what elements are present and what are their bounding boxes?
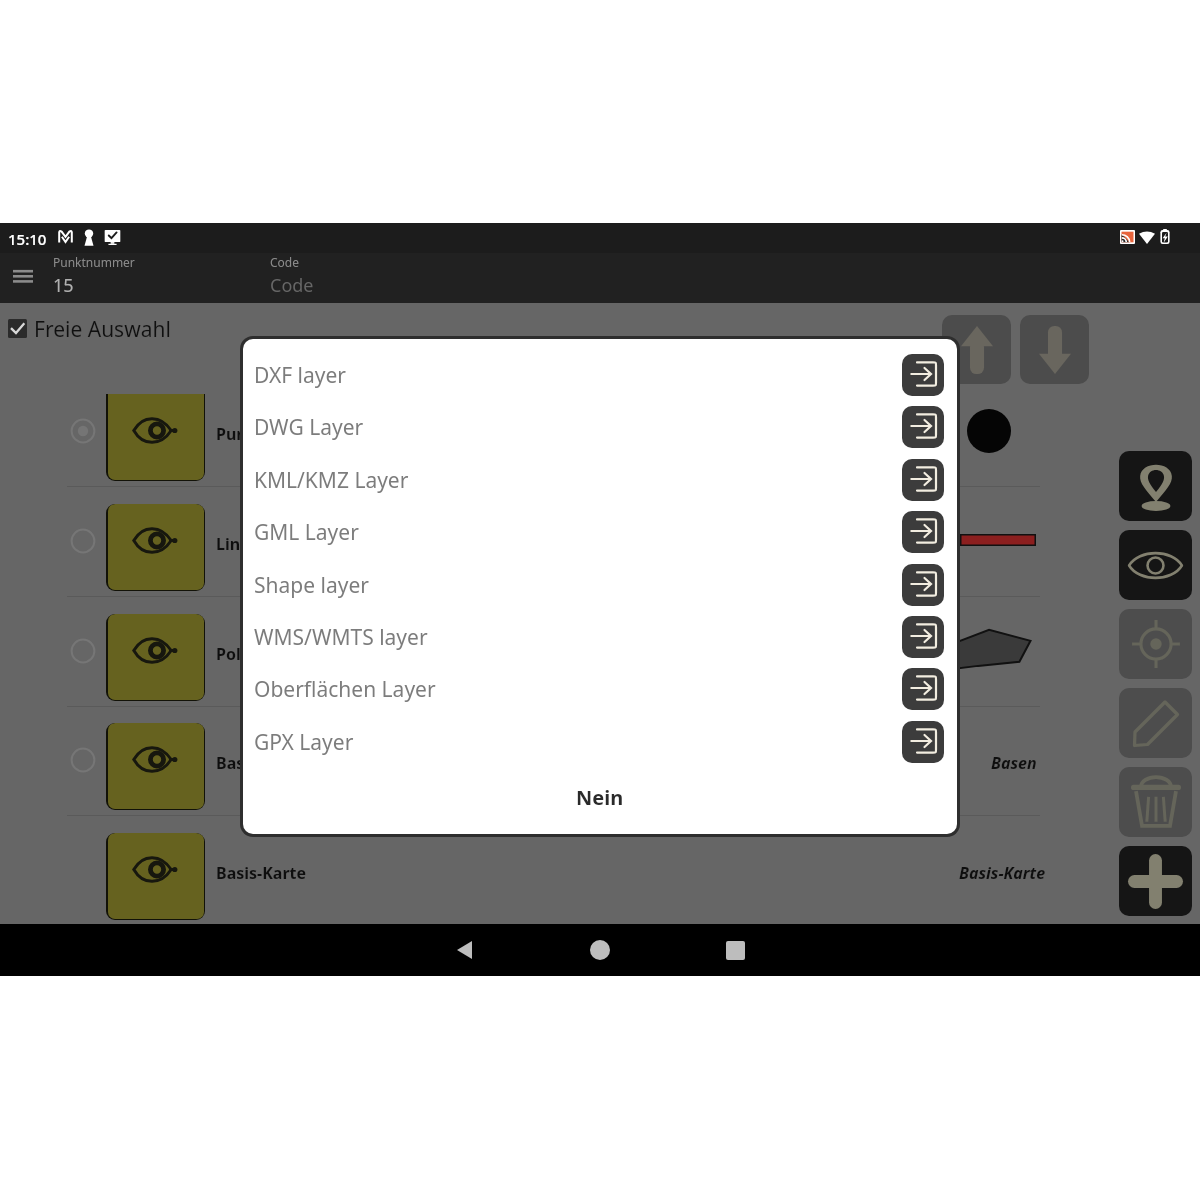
button[interactable]: Toggle visibility of Linien <box>106 504 205 591</box>
button[interactable]: GML Layer <box>243 506 957 558</box>
button[interactable]: Menu <box>2 257 44 299</box>
staticText: Code <box>270 254 299 270</box>
button[interactable]: Toggle visibility of Punkte <box>106 394 205 481</box>
button[interactable]: WMS/WMTS layer <box>243 611 957 663</box>
staticText: GML Layer <box>254 518 359 547</box>
button[interactable]: Freie Auswahl <box>4 315 184 347</box>
staticText: Polygone <box>216 643 290 665</box>
button[interactable]: Move down <box>1020 315 1089 384</box>
button[interactable]: Nein <box>243 769 957 825</box>
button[interactable]: Add <box>1119 846 1192 916</box>
staticText: Punkte <box>216 423 274 445</box>
button[interactable]: Toggle visibility of Basen <box>106 723 205 810</box>
button[interactable]: Home <box>510 924 690 976</box>
button[interactable]: Select Punkte <box>70 418 96 444</box>
button[interactable]: Select Linien <box>70 528 96 554</box>
staticText: Shape layer <box>254 571 369 600</box>
button[interactable]: Locate <box>1119 609 1192 679</box>
staticText: Freie Auswahl <box>34 315 171 344</box>
button[interactable]: KML/KMZ Layer <box>243 454 957 506</box>
button[interactable]: Shape layer <box>243 559 957 611</box>
staticText: Punktnummer <box>53 254 135 270</box>
staticText: 15:10 <box>8 229 47 249</box>
button[interactable]: Import Oberflächen Layer <box>902 668 944 710</box>
button[interactable]: Recents <box>645 924 825 976</box>
button[interactable]: Edit <box>1119 688 1192 758</box>
button[interactable]: Import GPX Layer <box>902 721 944 763</box>
staticText: Linien <box>216 533 265 555</box>
staticText: WMS/WMTS layer <box>254 623 428 652</box>
button[interactable]: Import Shape layer <box>902 564 944 606</box>
button[interactable]: Select Polygone <box>70 638 96 664</box>
staticText: KML/KMZ Layer <box>254 466 409 495</box>
button[interactable]: Import DXF layer <box>902 354 944 396</box>
staticText: 15 <box>53 273 74 298</box>
button[interactable]: Import DWG Layer <box>902 406 944 448</box>
staticText: Basen <box>991 752 1037 774</box>
button[interactable]: Move up <box>942 315 1011 384</box>
button[interactable]: Toggle visibility of Basis-Karte <box>106 833 205 920</box>
staticText: Nein <box>576 784 624 811</box>
button[interactable]: GPX Layer <box>243 716 957 768</box>
button[interactable]: Toggle visibility of Polygone <box>106 614 205 701</box>
staticText: DXF layer <box>254 361 347 390</box>
staticText: GPX Layer <box>254 728 354 757</box>
button[interactable]: Import GML Layer <box>902 511 944 553</box>
button[interactable]: Import KML/KMZ Layer <box>902 459 944 501</box>
button[interactable]: Marker <box>1119 451 1192 521</box>
button[interactable]: Back <box>375 924 555 976</box>
staticText: Code <box>270 273 314 298</box>
staticText: Basis-Karte <box>216 862 307 884</box>
staticText: DWG Layer <box>254 413 364 442</box>
button[interactable]: Select Basen <box>70 747 96 773</box>
button[interactable]: Delete <box>1119 767 1192 837</box>
button[interactable]: DWG Layer <box>243 401 957 453</box>
button[interactable]: Show layer <box>1119 530 1192 600</box>
button[interactable]: DXF layer <box>243 349 957 401</box>
staticText: Oberflächen Layer <box>254 675 436 704</box>
staticText: Basen <box>216 752 265 774</box>
button[interactable]: Oberflächen Layer <box>243 663 957 715</box>
button[interactable]: Import WMS/WMTS layer <box>902 616 944 658</box>
staticText: Basis-Karte <box>959 862 1046 884</box>
